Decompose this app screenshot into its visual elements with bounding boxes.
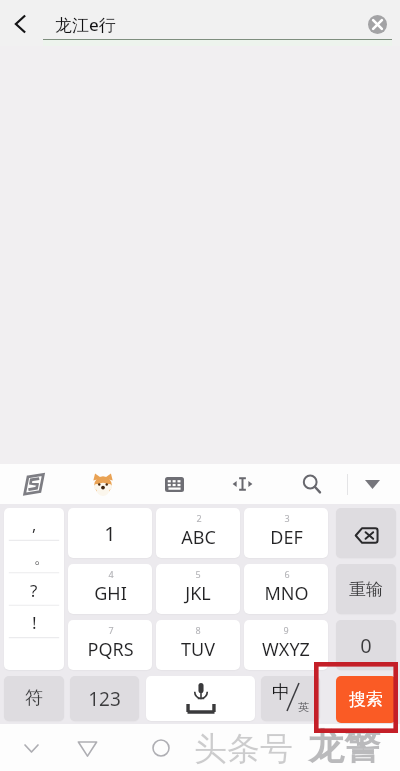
staticText: 2 bbox=[196, 512, 202, 524]
button[interactable]: Move cursor bbox=[220, 466, 264, 502]
button[interactable]: Emoji bbox=[81, 466, 125, 502]
staticText: WXYZ bbox=[262, 637, 310, 662]
staticText: ! bbox=[32, 611, 37, 634]
button[interactable]: 龙江e行 bbox=[55, 13, 116, 36]
staticText: TUV bbox=[181, 637, 215, 662]
button[interactable]: 4 bbox=[68, 564, 152, 614]
button[interactable]: 8 bbox=[156, 620, 240, 670]
button[interactable]: 重输 bbox=[336, 564, 396, 614]
staticText: 5 bbox=[195, 568, 201, 580]
button[interactable]: 7 bbox=[68, 620, 152, 670]
button[interactable]: 搜索 bbox=[336, 676, 396, 723]
button[interactable]: Back bbox=[67, 728, 107, 768]
button[interactable]: 2 bbox=[156, 508, 240, 558]
staticText: 1 bbox=[104, 520, 116, 547]
staticText: 符 bbox=[25, 687, 43, 710]
staticText: 头条号 bbox=[194, 728, 293, 770]
staticText: 。 bbox=[34, 548, 50, 568]
staticText: 4 bbox=[108, 568, 114, 580]
staticText: 123 bbox=[88, 686, 121, 712]
staticText: 中 bbox=[272, 681, 290, 704]
button[interactable]: 9 bbox=[244, 620, 328, 670]
button[interactable]: 3 bbox=[244, 508, 328, 558]
button[interactable]: 1 bbox=[68, 508, 152, 558]
button[interactable]: Clear text bbox=[364, 11, 390, 37]
staticText: , bbox=[32, 514, 37, 536]
staticText: GHI bbox=[94, 581, 127, 606]
staticText: 0 bbox=[360, 632, 372, 659]
button[interactable]: 5 bbox=[156, 564, 240, 614]
button[interactable]: 123 bbox=[70, 676, 139, 721]
button[interactable]: Punctuation bbox=[4, 508, 64, 670]
button[interactable]: Space bbox=[146, 676, 255, 721]
staticText: 英 bbox=[298, 700, 309, 714]
button[interactable]: Keyboard layout bbox=[152, 466, 196, 502]
staticText: 龙警 bbox=[308, 724, 380, 769]
staticText: 3 bbox=[284, 512, 290, 524]
button[interactable]: 6 bbox=[244, 564, 328, 614]
button[interactable]: 0 bbox=[336, 620, 396, 670]
staticText: ? bbox=[30, 579, 38, 602]
button[interactable]: Backspace bbox=[336, 508, 396, 558]
button[interactable]: Sogou input method bbox=[12, 466, 56, 502]
button[interactable]: Hide keyboard bbox=[11, 728, 51, 768]
button[interactable]: Search bbox=[290, 466, 334, 502]
button[interactable]: Switch Chinese English bbox=[261, 676, 320, 721]
button[interactable]: Hide keyboard bbox=[350, 466, 394, 502]
staticText: 7 bbox=[108, 624, 114, 636]
button[interactable]: Back bbox=[3, 6, 39, 42]
staticText: JKL bbox=[185, 581, 211, 606]
staticText: MNO bbox=[264, 581, 309, 606]
staticText: 9 bbox=[283, 624, 289, 636]
staticText: 重输 bbox=[349, 579, 383, 600]
staticText: 8 bbox=[195, 624, 201, 636]
button[interactable]: 符 bbox=[4, 676, 64, 721]
staticText: ABC bbox=[181, 525, 216, 550]
staticText: DEF bbox=[270, 525, 303, 550]
staticText: PQRS bbox=[87, 637, 134, 662]
button[interactable]: Home bbox=[141, 728, 181, 768]
staticText: 搜索 bbox=[349, 689, 383, 710]
staticText: 6 bbox=[284, 568, 290, 580]
